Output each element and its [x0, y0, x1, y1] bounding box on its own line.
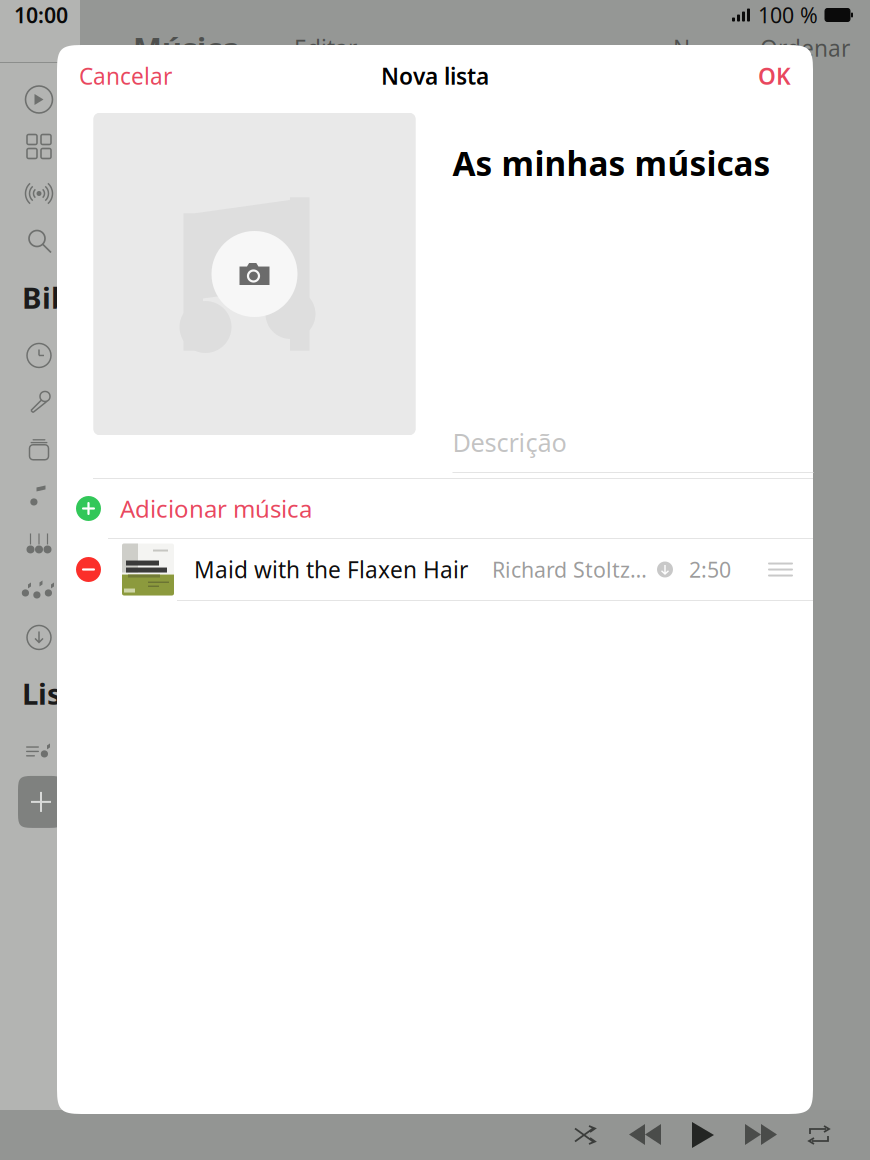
staticText: Bib: [22, 278, 70, 317]
staticText: List: [22, 674, 75, 713]
staticText: N…: [673, 33, 708, 63]
staticText: OK: [758, 61, 791, 91]
staticText: Cancelar: [79, 61, 172, 91]
staticText: 2:50: [689, 555, 731, 584]
staticText: Adicionar música: [120, 493, 312, 524]
button[interactable]: Adicionar música: [57, 479, 813, 538]
button[interactable]: Remove song: [76, 557, 101, 582]
staticText: Editar: [294, 33, 357, 63]
staticText: 100 %: [758, 1, 818, 29]
staticText: Nova lista: [381, 61, 489, 91]
staticText: As minhas músicas: [452, 141, 770, 185]
staticText: Richard Stoltz…: [492, 555, 647, 584]
staticText: 10:00: [14, 1, 68, 29]
button[interactable]: OK: [758, 53, 791, 99]
staticText: Música: [133, 28, 240, 68]
staticText: Descrição: [452, 425, 566, 459]
staticText: Ordenar: [760, 33, 850, 63]
button[interactable]: Cancelar: [79, 53, 172, 99]
button[interactable]: Choose playlist artwork: [93, 113, 415, 435]
staticText: Maid with the Flaxen Hair: [194, 554, 468, 584]
